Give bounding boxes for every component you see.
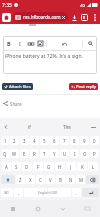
button[interactable]: K bbox=[77, 162, 87, 171]
staticText: , bbox=[18, 190, 20, 196]
staticText: K bbox=[81, 164, 84, 170]
staticText: Post reply bbox=[76, 84, 96, 90]
button[interactable]: 8 bbox=[70, 136, 79, 145]
button[interactable]: Home bbox=[2, 13, 11, 22]
button[interactable]: A bbox=[2, 162, 11, 171]
button[interactable]: . bbox=[72, 188, 81, 197]
button[interactable]: F bbox=[33, 162, 43, 171]
button[interactable]: I bbox=[70, 149, 79, 158]
staticText: 6 bbox=[53, 138, 56, 144]
button[interactable]: X bbox=[26, 175, 35, 184]
staticText: 4G bbox=[80, 3, 86, 8]
staticText: O bbox=[83, 151, 87, 157]
button[interactable]: 0 bbox=[90, 136, 99, 145]
button[interactable]: Format bbox=[5, 39, 12, 48]
staticText: 4 bbox=[33, 138, 36, 144]
button[interactable]: Share bbox=[3, 100, 22, 107]
button[interactable]: M bbox=[76, 175, 85, 184]
button[interactable]: S bbox=[12, 162, 21, 171]
button[interactable]: Enter bbox=[82, 188, 99, 197]
button[interactable]: !#1 bbox=[1, 188, 13, 197]
button[interactable]: Format bbox=[27, 39, 34, 48]
button[interactable]: if bbox=[11, 118, 48, 136]
button[interactable]: Format bbox=[61, 39, 68, 48]
button[interactable]: R bbox=[30, 149, 39, 158]
staticText: E bbox=[23, 151, 26, 157]
button[interactable]: Recent apps bbox=[0, 200, 25, 217]
staticText: English (UK) bbox=[38, 190, 58, 195]
button[interactable]: O bbox=[80, 149, 89, 158]
button[interactable]: Q bbox=[1, 149, 9, 158]
staticText: 0 bbox=[93, 138, 96, 144]
staticText: L bbox=[92, 164, 95, 170]
button[interactable]: Switch keyboard bbox=[75, 200, 100, 217]
button[interactable]: Previous suggestions bbox=[0, 118, 11, 136]
button[interactable]: T bbox=[40, 149, 49, 158]
staticText: The bbox=[63, 124, 71, 130]
button[interactable]: L bbox=[88, 162, 98, 171]
button[interactable]: t5 bbox=[13, 12, 68, 22]
button[interactable]: E bbox=[20, 149, 29, 158]
staticText: if bbox=[28, 124, 31, 130]
button[interactable]: Hide keyboard bbox=[50, 200, 75, 217]
button[interactable]: 7 bbox=[60, 136, 69, 145]
staticText: M bbox=[79, 177, 83, 183]
staticText: T bbox=[43, 151, 46, 157]
staticText: D bbox=[25, 164, 29, 170]
button[interactable]: V bbox=[46, 175, 55, 184]
button[interactable]: Backspace bbox=[86, 175, 99, 184]
button[interactable]: Post reply bbox=[69, 83, 98, 90]
button[interactable]: H bbox=[55, 162, 65, 171]
staticText: Q bbox=[3, 151, 7, 157]
button[interactable]: , bbox=[14, 188, 23, 197]
button[interactable]: N bbox=[66, 175, 75, 184]
staticText: B bbox=[7, 40, 11, 47]
button[interactable]: G bbox=[44, 162, 54, 171]
button[interactable]: 3 bbox=[20, 136, 29, 145]
staticText: 8 bbox=[73, 138, 76, 144]
button[interactable]: Attach files bbox=[2, 83, 33, 90]
button[interactable]: P bbox=[90, 149, 99, 158]
staticText: 1 bbox=[4, 138, 7, 144]
staticText: . bbox=[76, 190, 78, 196]
button[interactable]: Format bbox=[37, 39, 44, 48]
button[interactable]: Z bbox=[16, 175, 25, 184]
staticText: F bbox=[37, 164, 40, 170]
button[interactable]: Shift bbox=[1, 175, 15, 184]
button[interactable]: 2 bbox=[10, 136, 19, 145]
staticText: C bbox=[39, 177, 42, 183]
button[interactable]: 5 bbox=[40, 136, 49, 145]
staticText: 5 bbox=[43, 138, 46, 144]
staticText: Attach files bbox=[9, 84, 31, 90]
button[interactable]: The bbox=[48, 118, 86, 136]
button[interactable]: U bbox=[60, 149, 69, 158]
button[interactable]: Downloads bbox=[70, 13, 79, 22]
button[interactable]: More options bbox=[90, 13, 99, 22]
button[interactable]: W bbox=[10, 149, 19, 158]
button[interactable]: 4 bbox=[30, 136, 39, 145]
staticText: 3 bbox=[23, 138, 26, 144]
staticText: X bbox=[29, 177, 32, 183]
staticText: Y bbox=[53, 151, 56, 157]
staticText: P bbox=[93, 151, 96, 157]
button[interactable]: Tabs bbox=[80, 13, 89, 22]
staticText: 7 bbox=[63, 138, 66, 144]
button[interactable]: 6 bbox=[50, 136, 59, 145]
button[interactable]: English (UK) bbox=[24, 188, 71, 197]
button[interactable]: J bbox=[66, 162, 76, 171]
staticText: U bbox=[63, 151, 67, 157]
button[interactable]: Y bbox=[50, 149, 59, 158]
button[interactable]: C bbox=[36, 175, 45, 184]
button[interactable]: 9 bbox=[80, 136, 89, 145]
staticText: G bbox=[47, 164, 51, 170]
staticText: I bbox=[19, 40, 21, 47]
staticText: N bbox=[69, 177, 73, 183]
staticText: V bbox=[49, 177, 52, 183]
button[interactable]: Format bbox=[87, 39, 94, 48]
button[interactable]: More suggestions bbox=[86, 118, 100, 136]
button[interactable]: Format bbox=[16, 39, 23, 48]
button[interactable]: Home bbox=[25, 200, 50, 217]
button[interactable]: D bbox=[22, 162, 32, 171]
button[interactable]: 1 bbox=[1, 136, 9, 145]
button[interactable]: B bbox=[56, 175, 65, 184]
